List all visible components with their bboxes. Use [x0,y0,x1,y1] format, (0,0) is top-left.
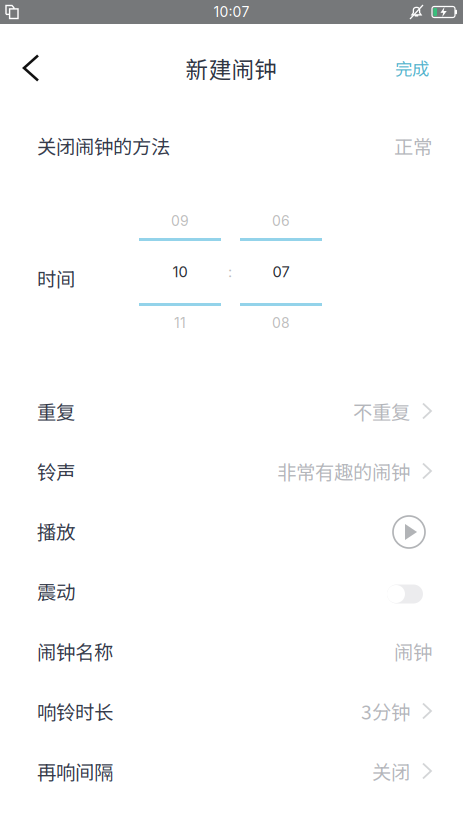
staticText: 震动 [37,577,75,605]
staticText: : [228,263,232,281]
staticText: 09 [171,212,189,229]
staticText: 07 [272,263,289,281]
button[interactable]: 闹钟名称 [0,621,463,681]
staticText: 完成 [395,55,429,81]
staticText: 11 [174,314,186,331]
staticText: 非常有趣的闹钟 [277,457,410,485]
button[interactable]: 震动 [0,561,463,621]
button[interactable]: 再响间隔 [0,741,463,801]
staticText: 08 [272,314,290,331]
staticText: 铃声 [37,457,75,485]
staticText: 10 [172,263,187,281]
staticText: 响铃时长 [37,697,113,725]
staticText: 新建闹钟 [185,52,277,84]
staticText: 正常 [394,131,432,159]
button[interactable]: 返回 [0,37,58,98]
staticText: 关闭 [372,757,410,785]
staticText: 重复 [37,397,75,425]
staticText: 闹钟 [394,637,432,665]
staticText: 不重复 [353,397,410,425]
button[interactable]: 完成 [375,37,463,99]
staticText: 关闭闹钟的方法 [37,131,170,159]
button[interactable]: 铃声 [0,441,463,501]
staticText: 时间 [37,264,75,292]
staticText: 3分钟 [361,697,410,725]
staticText: 再响间隔 [37,757,113,785]
staticText: 闹钟名称 [37,637,113,665]
button[interactable]: 播放 [0,501,463,561]
staticText: 播放 [37,517,75,545]
button[interactable]: 响铃时长 [0,681,463,741]
staticText: 06 [272,212,290,229]
button[interactable]: 关闭闹钟的方法 [0,112,463,179]
staticText: 10:07 [213,3,249,20]
button[interactable]: 重复 [0,381,463,441]
